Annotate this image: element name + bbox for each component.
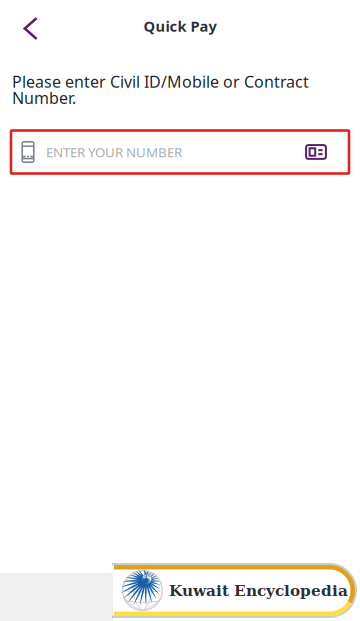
button[interactable]: Scan ID card [305, 144, 349, 160]
staticText: Number. [12, 87, 76, 108]
staticText: Please enter Civil ID/Mobile or Contract [12, 71, 309, 92]
staticText: ENTER YOUR NUMBER [46, 143, 182, 161]
button[interactable]: Back [0, 0, 54, 54]
staticText: Kuwait Encyclopedia [169, 581, 348, 599]
staticText: Quick Pay [143, 16, 216, 36]
